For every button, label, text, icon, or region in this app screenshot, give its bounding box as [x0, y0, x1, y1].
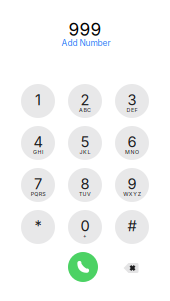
button[interactable]: 4	[21, 126, 55, 160]
button[interactable]: 7	[21, 168, 55, 202]
staticText: 0	[80, 217, 89, 235]
button[interactable]: *	[21, 210, 55, 244]
staticText: 4	[33, 133, 42, 151]
staticText: GHI	[33, 149, 43, 155]
staticText: 3	[127, 91, 136, 109]
button[interactable]: #	[115, 210, 149, 244]
staticText: MNO	[125, 149, 139, 155]
staticText: 6	[127, 133, 136, 151]
staticText: WXYZ	[123, 191, 141, 197]
button[interactable]: Add Number	[60, 40, 109, 50]
staticText: 1	[35, 91, 41, 109]
button[interactable]: 0	[68, 210, 102, 244]
staticText: 999	[68, 19, 101, 40]
button[interactable]: 5	[68, 126, 102, 160]
staticText: 9	[127, 175, 136, 193]
button[interactable]: Delete	[116, 255, 146, 281]
button[interactable]: 2	[68, 84, 102, 118]
button[interactable]: 8	[68, 168, 102, 202]
staticText: *	[34, 217, 41, 235]
button[interactable]: 9	[115, 168, 149, 202]
button[interactable]: 6	[115, 126, 149, 160]
staticText: 7	[34, 175, 42, 193]
staticText: 5	[80, 133, 89, 151]
staticText: #	[127, 217, 136, 235]
staticText: PQRS	[31, 191, 45, 197]
staticText: ABC	[79, 107, 91, 113]
staticText: Add Number	[61, 38, 110, 48]
button[interactable]: Call	[68, 252, 98, 282]
button[interactable]: 3	[115, 84, 149, 118]
button[interactable]: 1	[21, 84, 55, 118]
staticText: DEF	[126, 107, 137, 113]
staticText: 2	[80, 91, 89, 109]
staticText: TUV	[79, 191, 91, 197]
staticText: JKL	[79, 149, 90, 155]
staticText: 8	[80, 175, 89, 193]
staticText: +	[83, 233, 87, 239]
